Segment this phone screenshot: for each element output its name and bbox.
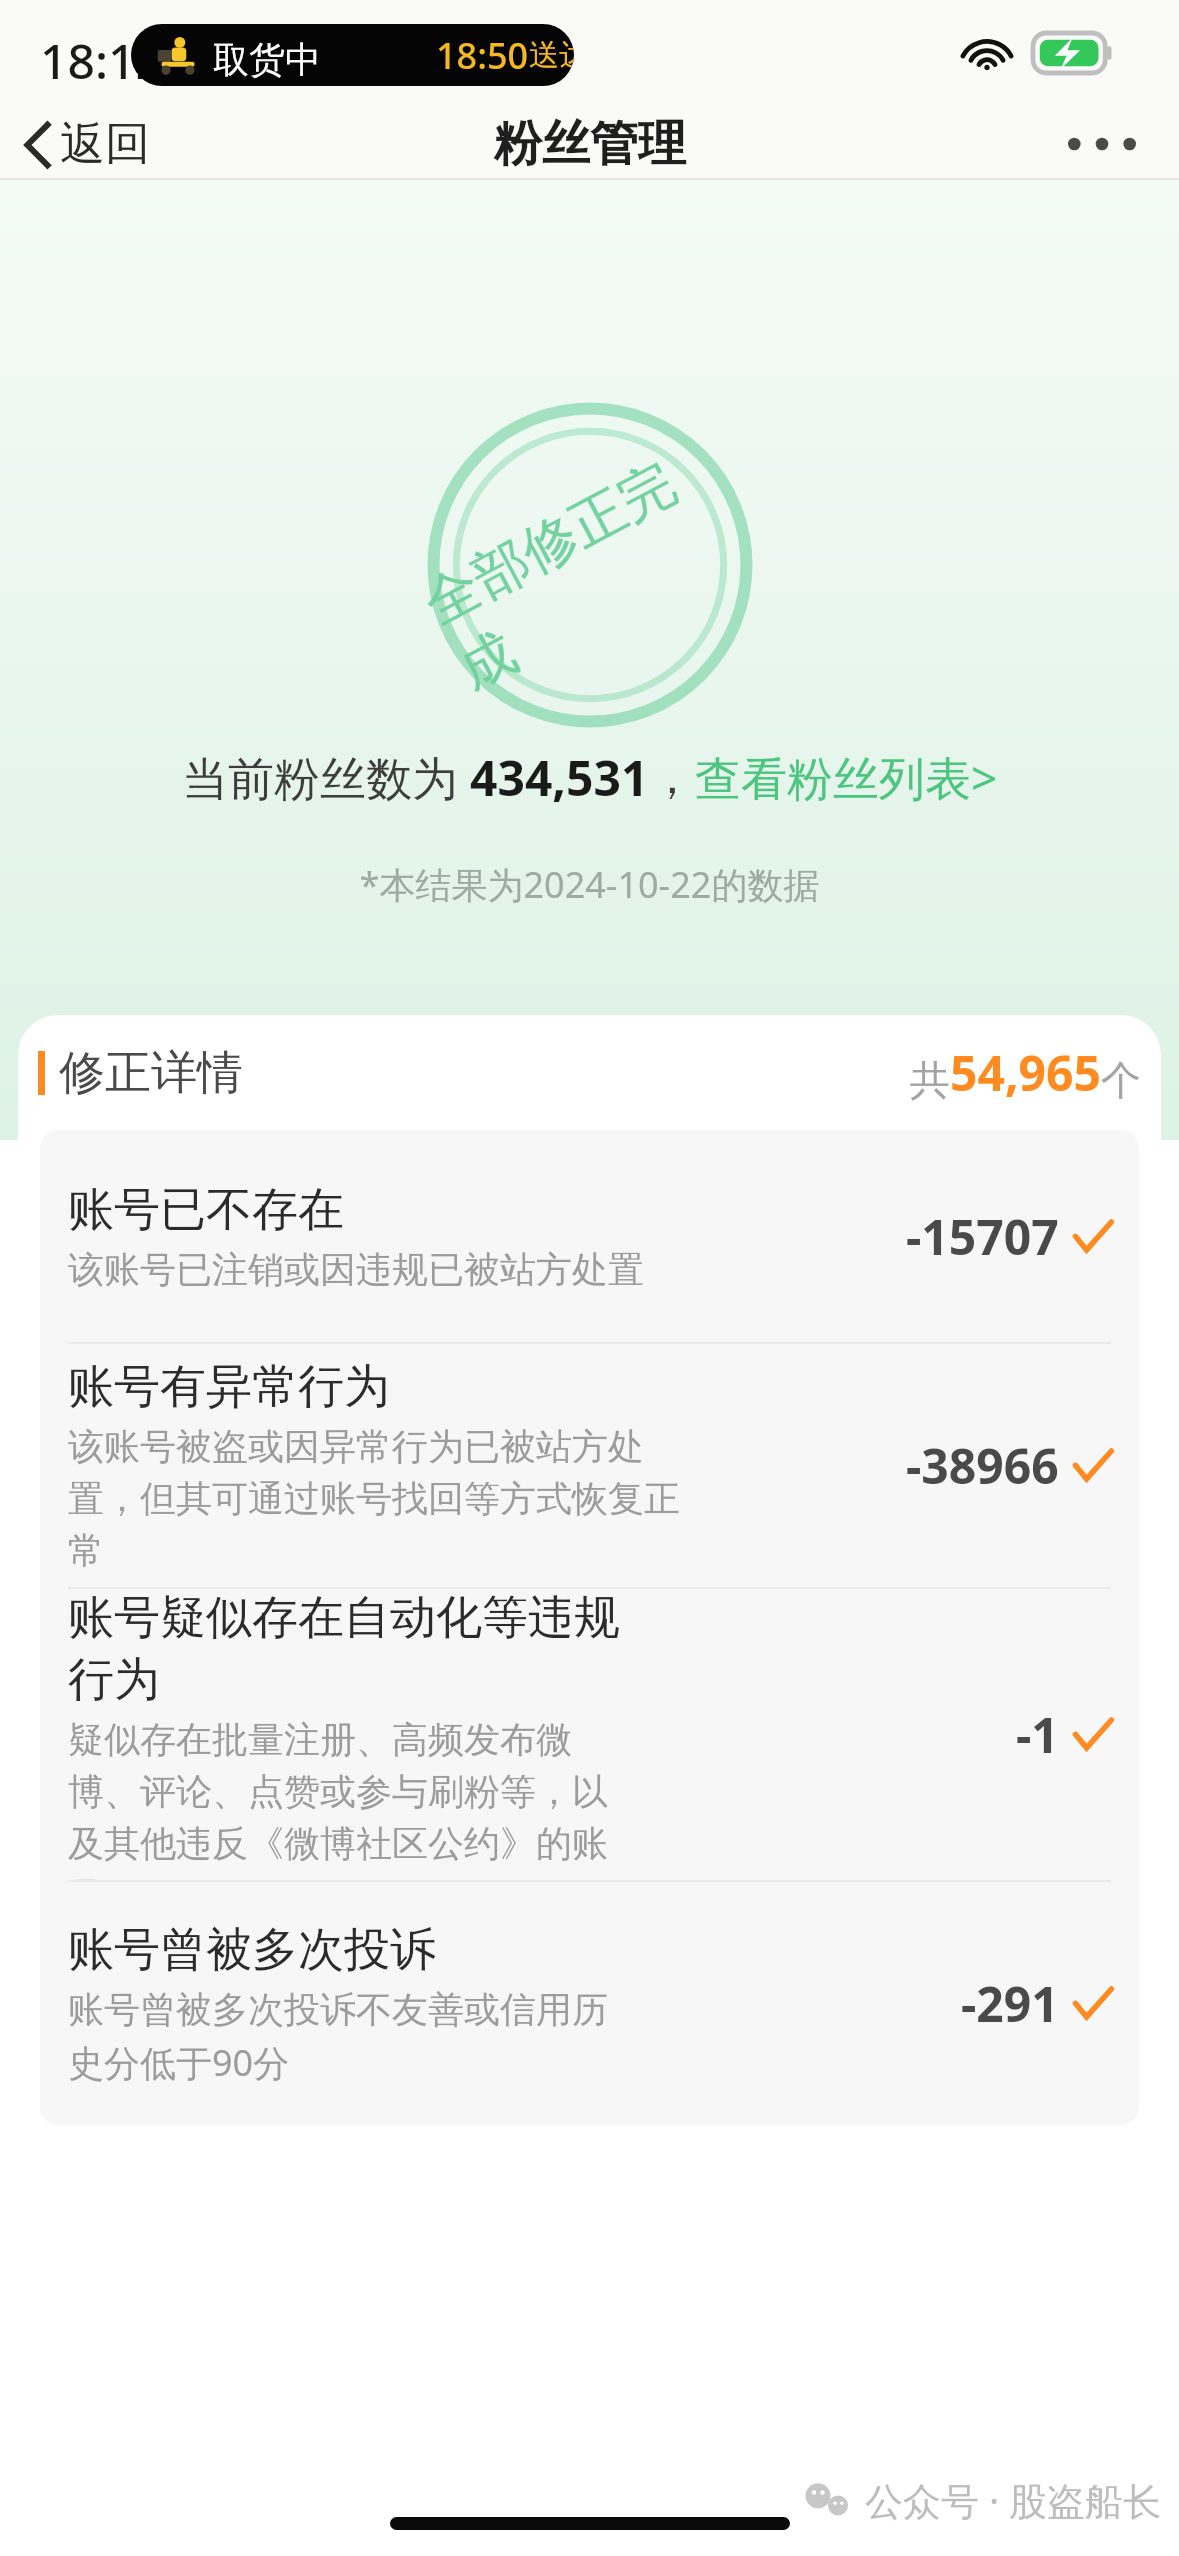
staticText: 取货中 xyxy=(213,37,321,82)
staticText: 434,531 xyxy=(470,745,649,810)
button[interactable]: 账号曾被多次投诉 xyxy=(40,1882,1139,2125)
staticText: 共 xyxy=(910,1055,950,1105)
staticText: 全部修正完成 xyxy=(412,425,768,705)
staticText: 账号曾被多次投诉 xyxy=(68,1921,436,1979)
staticText: 返回 xyxy=(60,116,150,173)
staticText: ， xyxy=(649,749,695,807)
staticText: 账号疑似存在自动化等违规行为 xyxy=(68,1589,628,1709)
other: Battery charging xyxy=(1033,33,1117,73)
staticText: *本结果为2024-10-22的数据 xyxy=(0,860,1179,909)
staticText: -1 xyxy=(1016,1702,1059,1767)
staticText: 该账号被盗或因异常行为已被站方处置，但其可通过账号找回等方式恢复正常 xyxy=(68,1424,708,1574)
staticText: 修正详情 xyxy=(59,1044,243,1102)
staticText: 账号已不存在 xyxy=(68,1181,344,1239)
staticText: 个 xyxy=(1101,1055,1141,1105)
staticText: 当前粉丝数为 xyxy=(182,746,470,809)
staticText: 查看粉丝列表> xyxy=(695,746,998,809)
button[interactable]: Delivery status xyxy=(131,24,574,86)
button[interactable]: More options xyxy=(1059,113,1145,175)
button[interactable]: 账号疑似存在自动化等违规行为 xyxy=(40,1589,1139,1880)
button[interactable]: 账号有异常行为 xyxy=(40,1344,1139,1587)
staticText: -15707 xyxy=(906,1204,1059,1269)
button[interactable]: 账号已不存在 xyxy=(40,1130,1139,1342)
staticText: 54,965 xyxy=(950,1040,1101,1105)
other: Wi-Fi xyxy=(963,32,1011,70)
staticText: 该账号已注销或因违规已被站方处置 xyxy=(68,1247,644,1292)
staticText: 送达 xyxy=(529,36,574,74)
staticText: -291 xyxy=(961,1971,1059,2036)
staticText: 粉丝管理 xyxy=(494,114,686,174)
staticText: 账号曾被多次投诉不友善或信用历史分低于90分 xyxy=(68,1987,628,2087)
button[interactable]: 返回 xyxy=(22,116,150,173)
staticText: 公众号 · 股盗船长 xyxy=(865,2474,1161,2526)
staticText: -38966 xyxy=(906,1433,1059,1498)
button[interactable]: 查看粉丝列表> xyxy=(695,746,998,809)
staticText: 疑似存在批量注册、高频发布微博、评论、点赞或参与刷粉等，以及其他违反《微博社区公… xyxy=(68,1717,628,1880)
staticText: 账号有异常行为 xyxy=(68,1358,390,1416)
staticText: 18:50 xyxy=(436,31,529,80)
staticText: 18:12 xyxy=(40,28,163,93)
